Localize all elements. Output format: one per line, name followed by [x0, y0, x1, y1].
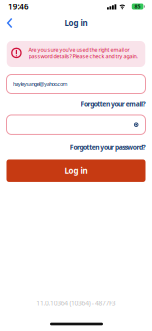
button[interactable] [6, 17, 13, 28]
staticText: Log in [64, 165, 87, 176]
button[interactable]: Log in [6, 159, 145, 182]
staticText: 11.0.10364 (10364) - 4877F3 [36, 299, 116, 307]
staticText: 19:46 [8, 1, 29, 12]
staticText: hayleysangel@yahoo.com [13, 80, 67, 88]
staticText: password details? Please check and try a… [28, 53, 137, 60]
button[interactable]: Forgotten your password? [70, 143, 145, 152]
staticText: Forgotten your password? [70, 143, 145, 152]
button[interactable]: hayleysangel@yahoo.com [6, 74, 145, 93]
staticText: Are you sure you've used the right email… [28, 46, 129, 53]
button[interactable] [6, 115, 145, 134]
staticText: Forgotten your email? [80, 100, 145, 108]
staticText: 85 [135, 3, 141, 10]
button[interactable]: Forgotten your email? [80, 100, 145, 108]
staticText: Log in [64, 18, 87, 28]
